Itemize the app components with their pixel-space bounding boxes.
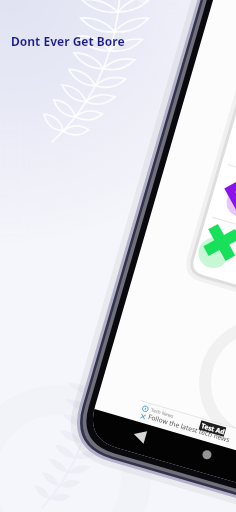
staticText: Dont Ever Get Bore [11,33,125,49]
